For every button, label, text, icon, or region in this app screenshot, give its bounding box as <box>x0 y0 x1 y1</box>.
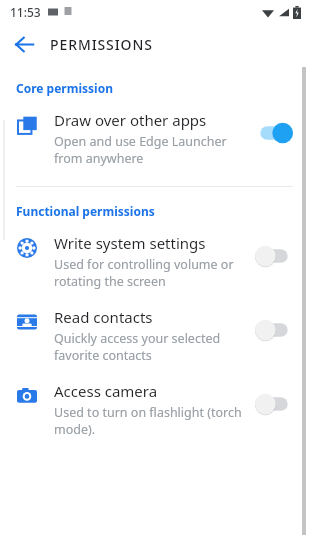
staticText: Used to turn on flashlight (torch mode). <box>54 404 242 437</box>
staticText: Access camera <box>54 381 158 401</box>
button[interactable]: Access camera <box>0 373 309 447</box>
staticText: Quickly access your selected favorite co… <box>54 330 221 363</box>
button[interactable]: On <box>255 122 293 144</box>
button[interactable]: Back <box>6 26 42 62</box>
staticText: Draw over other apps <box>54 110 207 130</box>
staticText: Used for controlling volume or rotating … <box>54 256 234 289</box>
button[interactable]: Off <box>255 319 293 341</box>
button[interactable]: Off <box>255 393 293 415</box>
staticText: PERMISSIONS <box>50 35 153 54</box>
staticText: Read contacts <box>54 307 153 327</box>
button[interactable]: Draw over other apps <box>0 102 309 176</box>
staticText: Core permission <box>16 80 113 96</box>
staticText: Functional permissions <box>16 203 155 219</box>
staticText: 11:53 <box>10 4 41 20</box>
button[interactable]: Write system settings <box>0 225 309 299</box>
button[interactable]: Off <box>255 245 293 267</box>
button[interactable]: Read contacts <box>0 299 309 373</box>
staticText: Write system settings <box>54 233 206 253</box>
staticText: Open and use Edge Launcher from anywhere <box>54 133 227 166</box>
